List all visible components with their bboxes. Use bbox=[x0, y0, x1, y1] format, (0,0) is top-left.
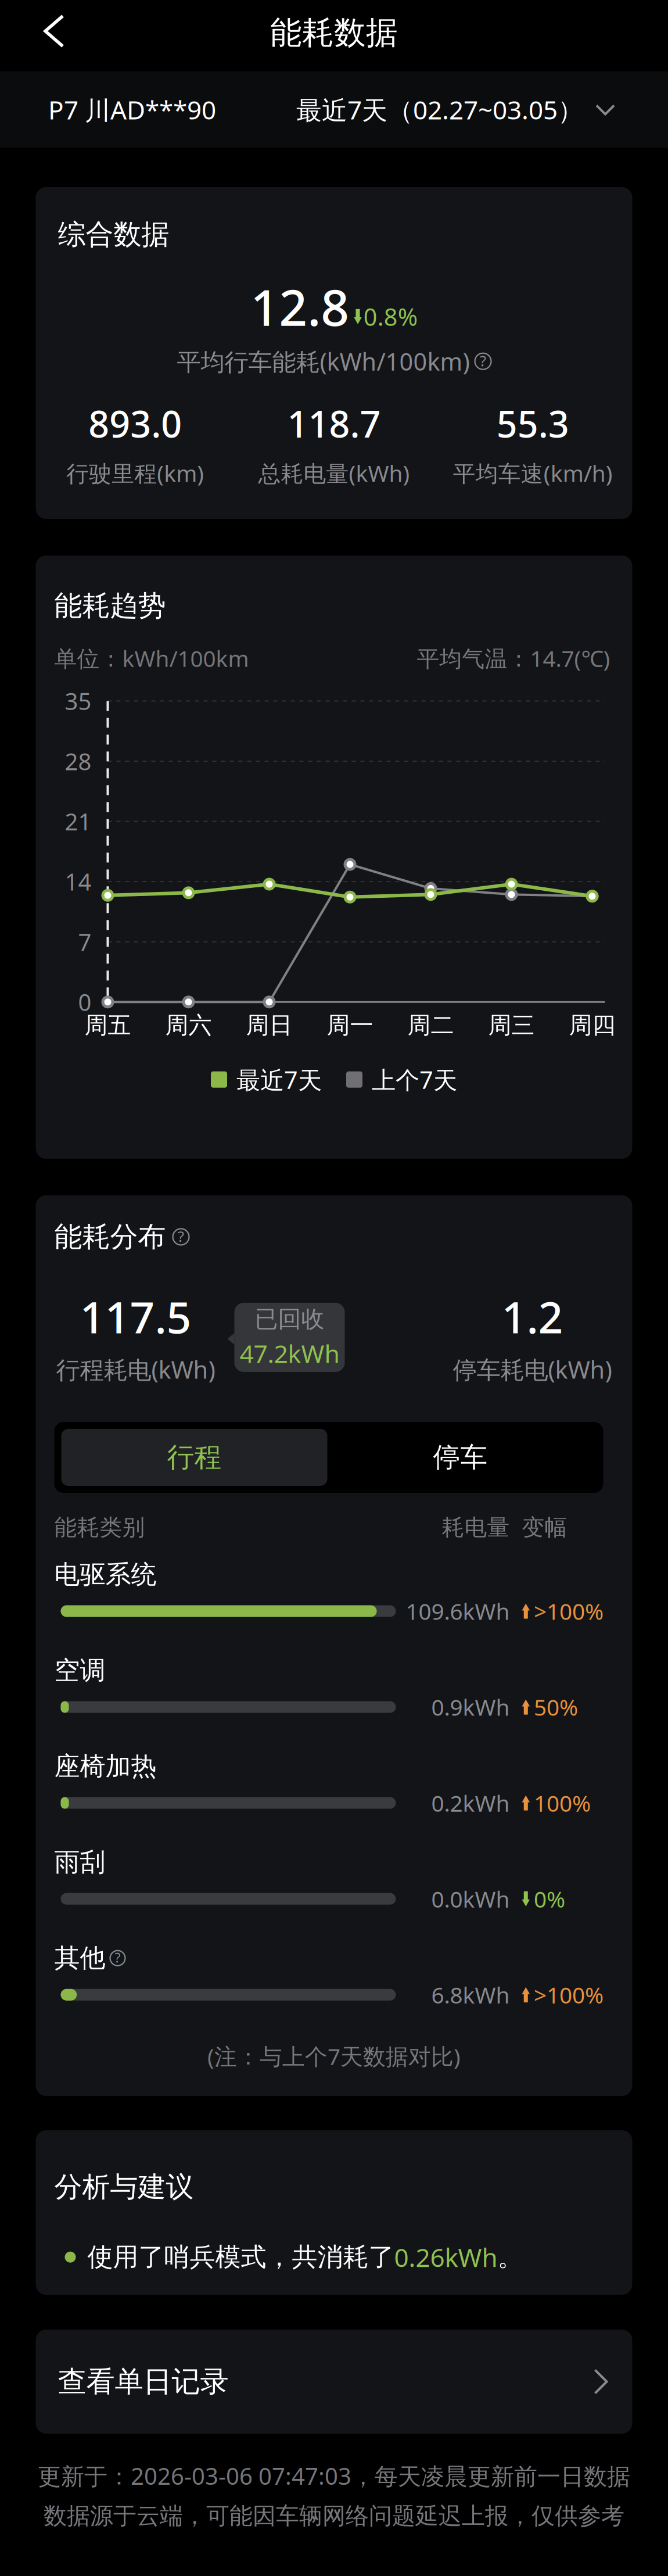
staticText: 耗电量 bbox=[442, 1514, 510, 1541]
button[interactable]: 查看单日记录 bbox=[36, 2330, 632, 2434]
staticText: 28 bbox=[65, 746, 91, 777]
staticText: 周四 bbox=[569, 1011, 615, 1039]
staticText: 最近7天（02.27~03.05） bbox=[296, 93, 583, 127]
staticText: 平均车速(km/h) bbox=[453, 458, 613, 488]
staticText: 雨刮 bbox=[54, 1846, 105, 1878]
staticText: 周五 bbox=[85, 1011, 131, 1039]
staticText: 使用了哨兵模式，共消耗了 bbox=[87, 2241, 394, 2273]
staticText: 空调 bbox=[54, 1655, 105, 1686]
staticText: ? bbox=[115, 1949, 121, 1966]
staticText: 周六 bbox=[165, 1011, 212, 1039]
staticText: 12.8 bbox=[250, 274, 349, 340]
staticText: 最近7天 bbox=[236, 1064, 322, 1095]
staticText: 118.7 bbox=[287, 399, 381, 448]
staticText: 7 bbox=[78, 926, 91, 957]
staticText: 能耗类别 bbox=[54, 1514, 145, 1541]
staticText: >100% bbox=[534, 1980, 604, 2010]
staticText: 0.0kWh bbox=[431, 1884, 510, 1914]
staticText: 平均行车能耗(kWh/100km) bbox=[177, 345, 470, 377]
staticText: 55.3 bbox=[497, 399, 569, 448]
staticText: 35 bbox=[65, 686, 91, 716]
button[interactable]: 最近7天（02.27~03.05） bbox=[0, 93, 616, 127]
staticText: 。 bbox=[498, 2241, 523, 2273]
staticText: ? bbox=[480, 351, 486, 370]
button[interactable]: 停车 bbox=[327, 1429, 593, 1486]
staticText: 行驶里程(km) bbox=[66, 458, 204, 488]
staticText: 数据源于云端，可能因车辆网络问题延迟上报，仅供参考 bbox=[44, 2502, 624, 2530]
staticText: 109.6kWh bbox=[406, 1596, 510, 1626]
staticText: 更新于：2026-03-06 07:47:03，每天凌晨更新前一日数据 bbox=[38, 2460, 630, 2491]
staticText: 停车 bbox=[433, 1441, 488, 1474]
staticText: 上个7天 bbox=[372, 1064, 457, 1095]
staticText: 查看单日记录 bbox=[58, 2364, 229, 2399]
staticText: 座椅加热 bbox=[54, 1751, 157, 1782]
staticText: 21 bbox=[65, 806, 91, 837]
button[interactable]: 行程 bbox=[61, 1429, 327, 1486]
staticText: 0.2kWh bbox=[431, 1788, 510, 1818]
staticText: 周二 bbox=[407, 1011, 454, 1039]
staticText: 其他 bbox=[54, 1942, 105, 1974]
staticText: 100% bbox=[534, 1788, 591, 1818]
staticText: 行程耗电(kWh) bbox=[56, 1353, 215, 1385]
staticText: 总耗电量(kWh) bbox=[258, 458, 410, 488]
staticText: 周日 bbox=[246, 1011, 292, 1039]
staticText: 0% bbox=[534, 1884, 565, 1914]
staticText: 1.2 bbox=[502, 1288, 563, 1345]
staticText: (注：与上个7天数据对比) bbox=[207, 2041, 461, 2071]
staticText: 综合数据 bbox=[58, 217, 169, 252]
staticText: 行程 bbox=[167, 1441, 222, 1474]
staticText: 能耗数据 bbox=[270, 13, 398, 52]
staticText: 平均气温：14.7(℃) bbox=[417, 643, 610, 673]
staticText: 0.8% bbox=[364, 301, 418, 333]
staticText: 单位：kWh/100km bbox=[54, 643, 249, 673]
staticText: P7 川AD***90 bbox=[48, 93, 216, 127]
staticText: 周一 bbox=[327, 1011, 373, 1039]
staticText: 能耗分布 bbox=[54, 1220, 166, 1254]
staticText: ? bbox=[178, 1227, 184, 1246]
staticText: 已回收 bbox=[255, 1305, 324, 1333]
staticText: 变幅 bbox=[522, 1514, 567, 1541]
staticText: 停车耗电(kWh) bbox=[453, 1353, 612, 1385]
staticText: 6.8kWh bbox=[431, 1980, 510, 2010]
staticText: 47.2kWh bbox=[240, 1337, 340, 1370]
button[interactable]: 返回 bbox=[28, 8, 91, 64]
staticText: 117.5 bbox=[80, 1288, 191, 1345]
staticText: 0.9kWh bbox=[431, 1692, 510, 1722]
staticText: 50% bbox=[534, 1692, 578, 1722]
staticText: 分析与建议 bbox=[54, 2170, 194, 2204]
staticText: 周三 bbox=[488, 1011, 535, 1039]
staticText: 0 bbox=[78, 987, 91, 1017]
staticText: 能耗趋势 bbox=[54, 589, 166, 623]
staticText: 电驱系统 bbox=[54, 1559, 157, 1590]
staticText: 893.0 bbox=[88, 399, 182, 448]
staticText: 0.26kWh bbox=[394, 2240, 498, 2274]
staticText: 14 bbox=[65, 866, 91, 897]
staticText: >100% bbox=[534, 1596, 604, 1626]
